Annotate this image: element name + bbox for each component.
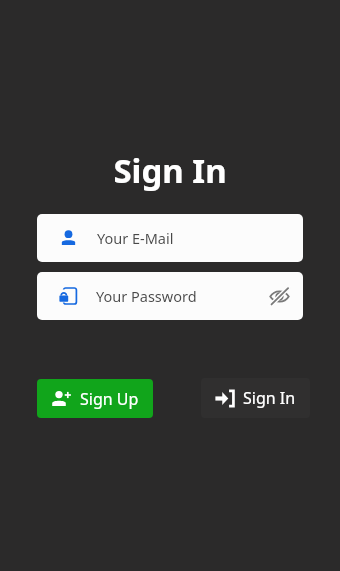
button[interactable]: Your Password (37, 272, 303, 320)
button[interactable]: Sign In (201, 378, 310, 418)
button[interactable]: Your E-Mail (37, 214, 303, 262)
staticText: Your Password (96, 286, 197, 306)
staticText: Sign In (113, 148, 227, 193)
button[interactable]: Show password (259, 276, 299, 316)
button[interactable]: Sign Up (37, 379, 153, 418)
staticText: Sign In (243, 387, 296, 409)
staticText: Your E-Mail (97, 228, 174, 248)
staticText: Sign Up (80, 388, 139, 410)
